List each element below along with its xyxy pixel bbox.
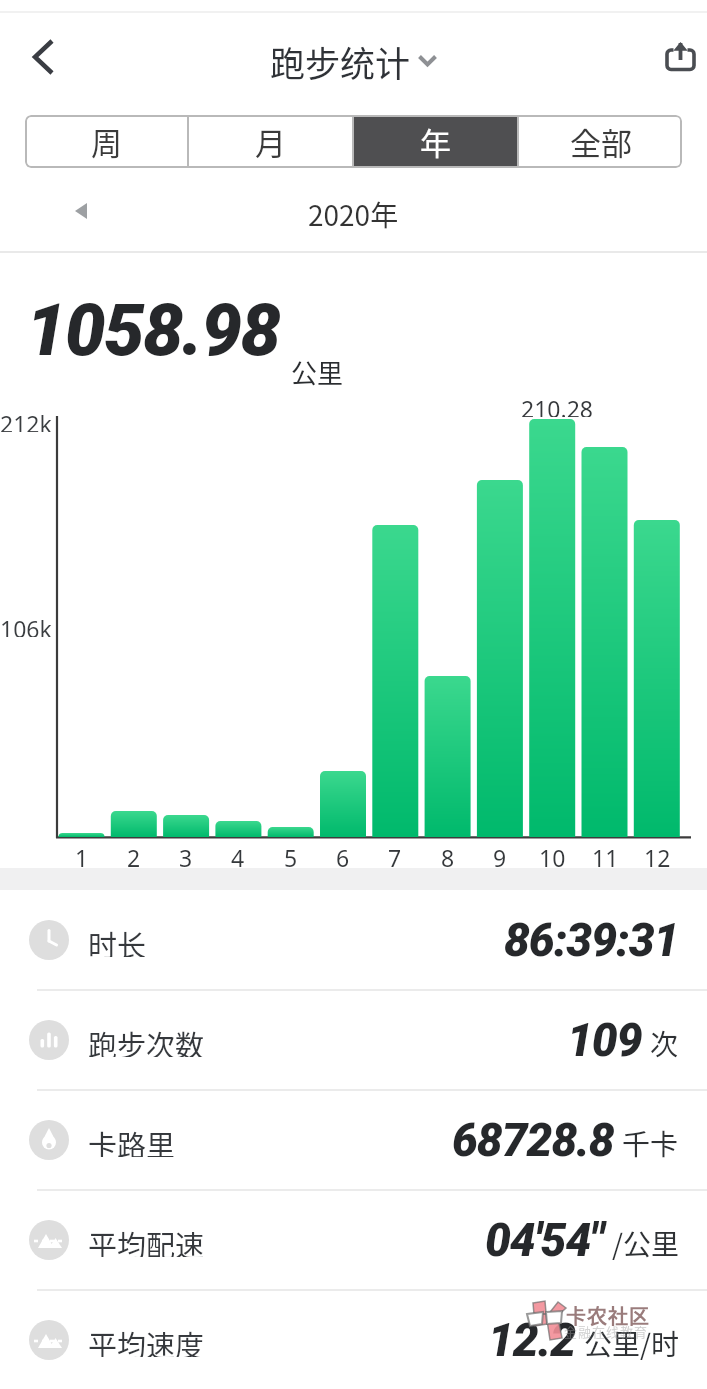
staticText: 时长 <box>88 923 147 957</box>
staticText: 1 <box>75 842 89 868</box>
staticText: 月 <box>255 119 286 164</box>
button[interactable] <box>0 990 707 1090</box>
staticText: 4 <box>231 842 245 868</box>
staticText: 10 <box>539 842 566 868</box>
button[interactable] <box>0 1190 707 1290</box>
staticText: 109 <box>567 1013 642 1067</box>
staticText: 5 <box>284 842 298 868</box>
button[interactable]: 周 <box>25 115 187 168</box>
staticText: 平均配速 <box>88 1223 205 1257</box>
staticText: /公里 <box>612 1223 679 1264</box>
staticText: 12 <box>644 842 671 868</box>
staticText: 106k <box>0 613 52 637</box>
staticText: 跑步统计 <box>270 36 411 80</box>
staticText: 1058.98 <box>26 288 280 372</box>
staticText: 年 <box>420 119 451 164</box>
button[interactable] <box>68 198 94 224</box>
staticText: 卡路里 <box>88 1123 176 1157</box>
button[interactable]: 跑步统计 <box>270 36 437 80</box>
staticText: 2 <box>127 842 141 868</box>
staticText: 7 <box>388 842 402 868</box>
staticText: 公里 <box>291 353 344 391</box>
staticText: 平均速度 <box>88 1323 205 1357</box>
staticText: 86:39:31 <box>504 913 679 967</box>
button[interactable] <box>25 32 65 82</box>
button[interactable] <box>656 36 698 78</box>
staticText: 210.28 <box>521 393 593 417</box>
button[interactable] <box>0 890 707 990</box>
staticText: 11 <box>592 842 619 868</box>
staticText: 卡农社区 <box>566 1301 650 1330</box>
staticText: 周 <box>91 119 122 164</box>
staticText: 12.2 <box>488 1313 576 1367</box>
button[interactable]: 全部 <box>519 115 682 168</box>
staticText: 3 <box>179 842 193 868</box>
button[interactable]: 月 <box>189 115 352 168</box>
staticText: 68728.8 <box>452 1113 614 1167</box>
button[interactable] <box>0 1290 707 1389</box>
staticText: 212k <box>0 408 52 432</box>
staticText: 金融在线教育 <box>564 1322 649 1341</box>
staticText: 8 <box>441 842 455 868</box>
staticText: 次 <box>650 1023 679 1064</box>
button[interactable] <box>0 1090 707 1190</box>
staticText: 全部 <box>570 119 632 164</box>
staticText: 6 <box>336 842 350 868</box>
staticText: 公里/时 <box>584 1323 679 1364</box>
staticText: 千卡 <box>622 1123 679 1164</box>
button[interactable]: 年 <box>354 115 517 168</box>
staticText: 9 <box>493 842 507 868</box>
staticText: 跑步次数 <box>88 1023 205 1057</box>
staticText: 04'54" <box>485 1213 604 1267</box>
staticText: 2020年 <box>308 194 399 230</box>
